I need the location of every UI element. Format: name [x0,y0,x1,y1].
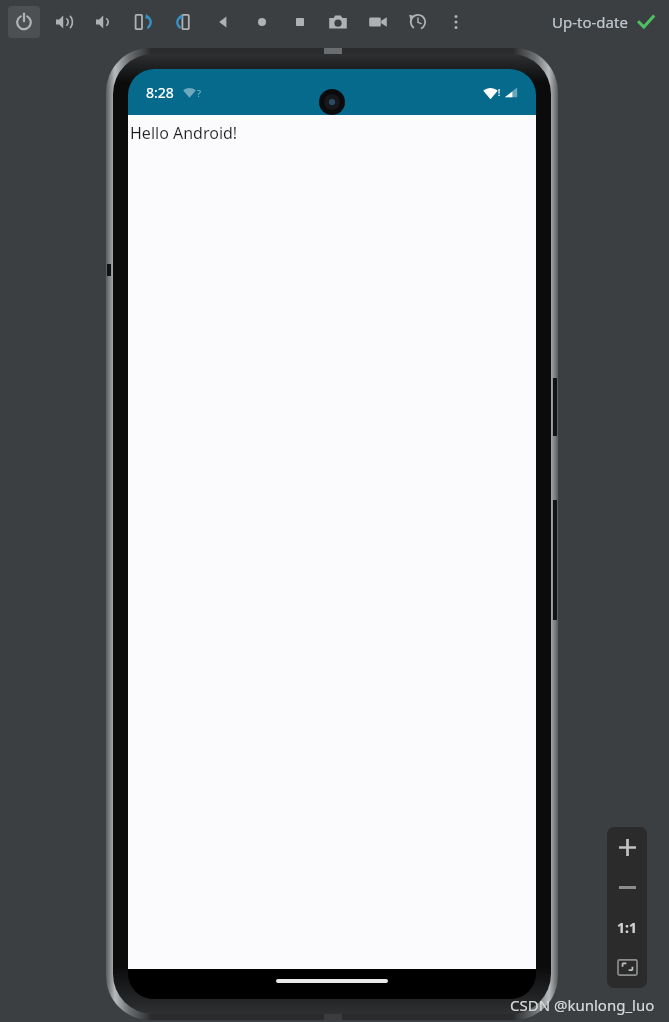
staticText: 1:1 [617,918,637,937]
button[interactable]: Back [208,6,240,38]
staticText: 8:28 [146,83,174,102]
staticText: Hello Android! [130,122,238,144]
button[interactable]: Actual size [607,907,647,947]
button[interactable]: Rotate left [128,6,160,38]
button[interactable]: Volume down [88,6,120,38]
button[interactable]: Record screen [362,6,394,38]
button[interactable]: Zoom out [607,867,647,907]
button[interactable]: More [440,6,472,38]
button[interactable]: Fit to window [607,947,647,987]
button[interactable]: Screenshot [322,6,354,38]
staticText: ! [498,87,501,98]
button[interactable]: Power [8,6,40,38]
staticText: Up-to-date [552,12,628,32]
button[interactable]: Zoom in [607,827,647,867]
button[interactable]: Volume up [48,6,80,38]
button[interactable]: Rotate right [168,6,200,38]
button[interactable]: Power [8,6,40,38]
button[interactable]: History [402,6,434,38]
staticText: CSDN @kunlong_luo [510,995,655,1015]
button[interactable]: Home [246,6,278,38]
button[interactable]: Overview [284,6,316,38]
staticText: ? [197,87,201,99]
